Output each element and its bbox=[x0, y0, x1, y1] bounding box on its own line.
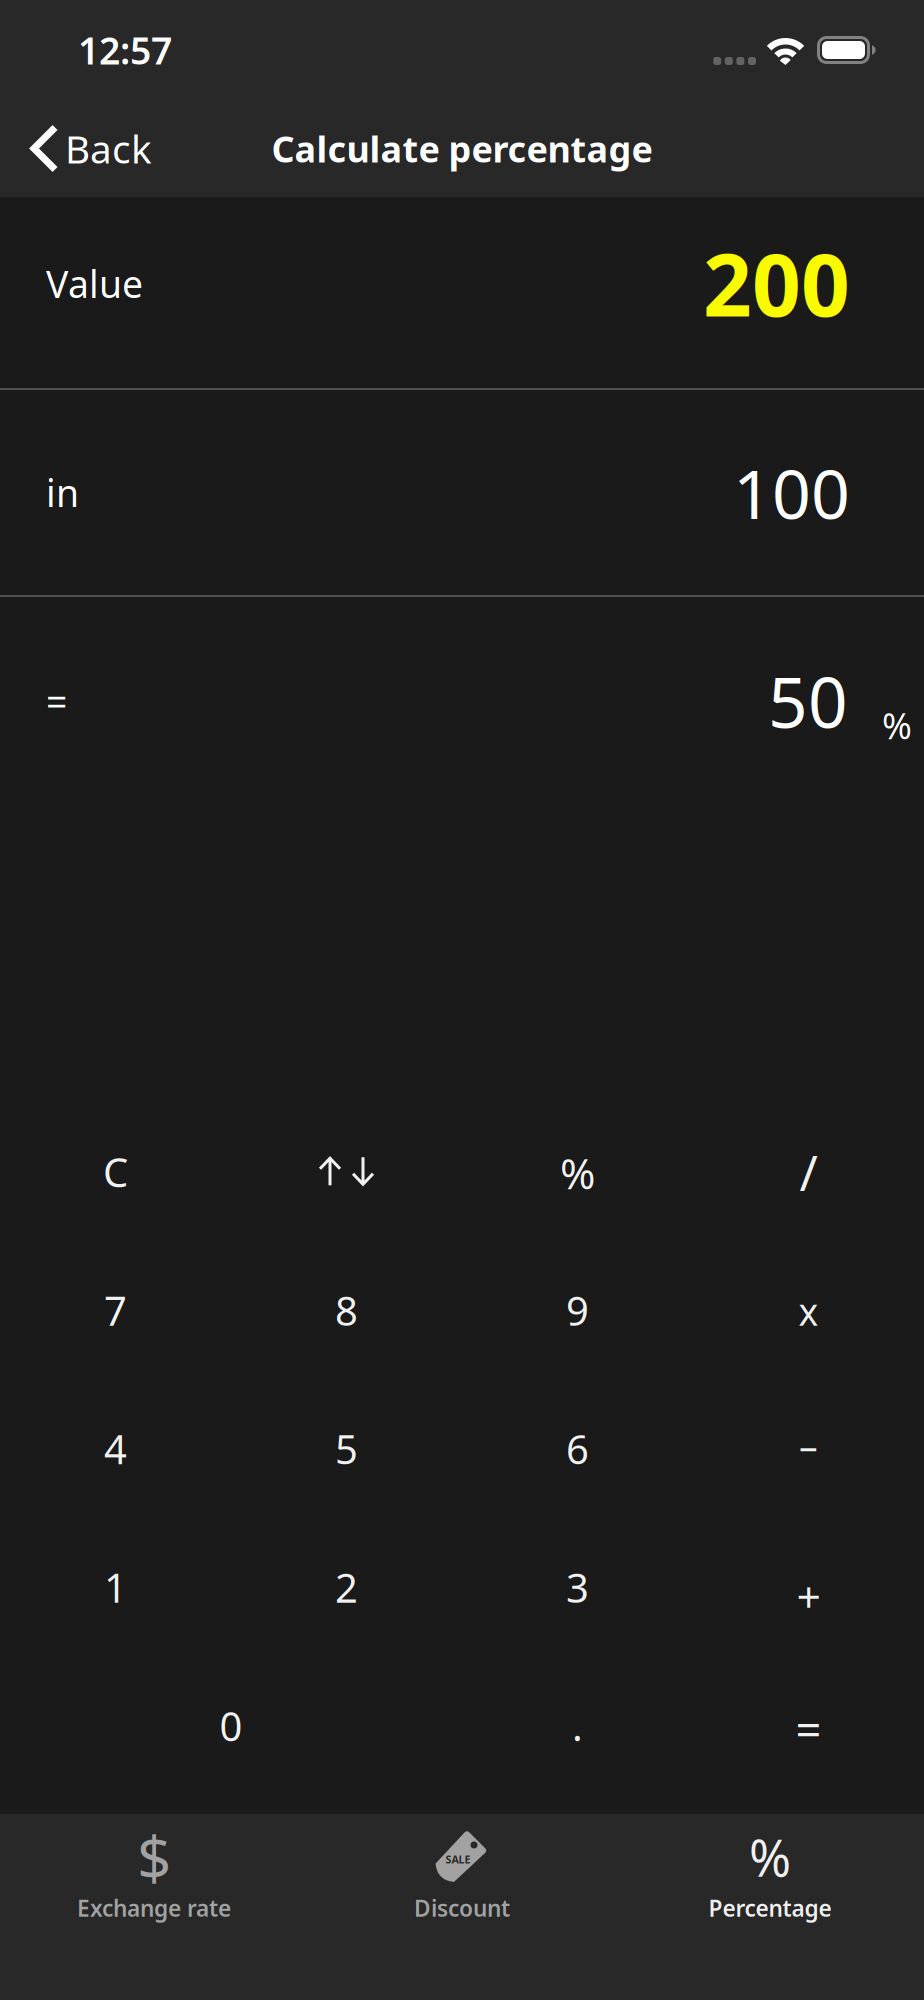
staticText: . bbox=[572, 1699, 583, 1752]
button[interactable]: C bbox=[0, 1102, 231, 1241]
button[interactable]: 3 bbox=[462, 1518, 693, 1656]
button[interactable]: Back bbox=[0, 100, 170, 197]
button[interactable]: 7 bbox=[0, 1241, 231, 1379]
staticText: = bbox=[795, 1699, 821, 1759]
button[interactable]: . bbox=[462, 1656, 693, 1795]
staticText: % bbox=[882, 701, 912, 749]
staticText: Value bbox=[46, 259, 143, 308]
staticText: Back bbox=[65, 123, 152, 174]
staticText: = bbox=[46, 676, 67, 726]
staticText: 0 bbox=[219, 1699, 242, 1752]
staticText: / bbox=[799, 1139, 817, 1204]
staticText: % bbox=[749, 1823, 791, 1891]
staticText: + bbox=[796, 1568, 820, 1625]
staticText: x bbox=[798, 1286, 818, 1336]
staticText: SALE bbox=[445, 1852, 470, 1866]
staticText: % bbox=[560, 1144, 595, 1201]
staticText: 3 bbox=[566, 1561, 589, 1614]
staticText: 200 bbox=[703, 227, 850, 340]
staticText: 1 bbox=[104, 1561, 127, 1614]
button[interactable]: 8 bbox=[231, 1241, 462, 1379]
button[interactable]: 6 bbox=[462, 1379, 693, 1518]
staticText: 8 bbox=[335, 1284, 358, 1337]
button[interactable]: 9 bbox=[462, 1241, 693, 1379]
staticText: – bbox=[799, 1421, 818, 1471]
button[interactable]: % bbox=[462, 1102, 693, 1241]
button[interactable]: $ bbox=[0, 1814, 308, 2000]
staticText: in bbox=[46, 468, 79, 517]
staticText: 6 bbox=[566, 1422, 589, 1475]
button[interactable]: = bbox=[693, 1656, 924, 1795]
button[interactable]: 5 bbox=[231, 1379, 462, 1518]
staticText: Exchange rate bbox=[77, 1893, 231, 1923]
staticText: 100 bbox=[733, 447, 850, 538]
button[interactable]: % bbox=[616, 1814, 924, 2000]
button[interactable]: 4 bbox=[0, 1379, 231, 1518]
button[interactable]: + bbox=[693, 1518, 924, 1656]
staticText: 2 bbox=[335, 1561, 358, 1614]
staticText: 9 bbox=[566, 1284, 589, 1337]
button[interactable]: 2 bbox=[231, 1518, 462, 1656]
staticText: Percentage bbox=[708, 1893, 831, 1923]
staticText: C bbox=[103, 1145, 128, 1198]
staticText: $ bbox=[137, 1817, 171, 1897]
button[interactable]: 1 bbox=[0, 1518, 231, 1656]
staticText: Discount bbox=[414, 1893, 510, 1923]
staticText: 12:57 bbox=[78, 25, 172, 75]
staticText: 5 bbox=[335, 1422, 358, 1475]
button[interactable]: – bbox=[693, 1379, 924, 1518]
staticText: 4 bbox=[104, 1422, 127, 1475]
button[interactable]: x bbox=[693, 1241, 924, 1379]
staticText: 50 bbox=[768, 655, 848, 747]
button[interactable]: Swap values bbox=[231, 1102, 462, 1241]
staticText: 7 bbox=[104, 1284, 127, 1337]
button[interactable]: 0 bbox=[0, 1656, 462, 1795]
button[interactable]: SALE bbox=[308, 1814, 616, 2000]
button[interactable]: / bbox=[693, 1102, 924, 1241]
staticText: Calculate percentage bbox=[271, 125, 652, 172]
